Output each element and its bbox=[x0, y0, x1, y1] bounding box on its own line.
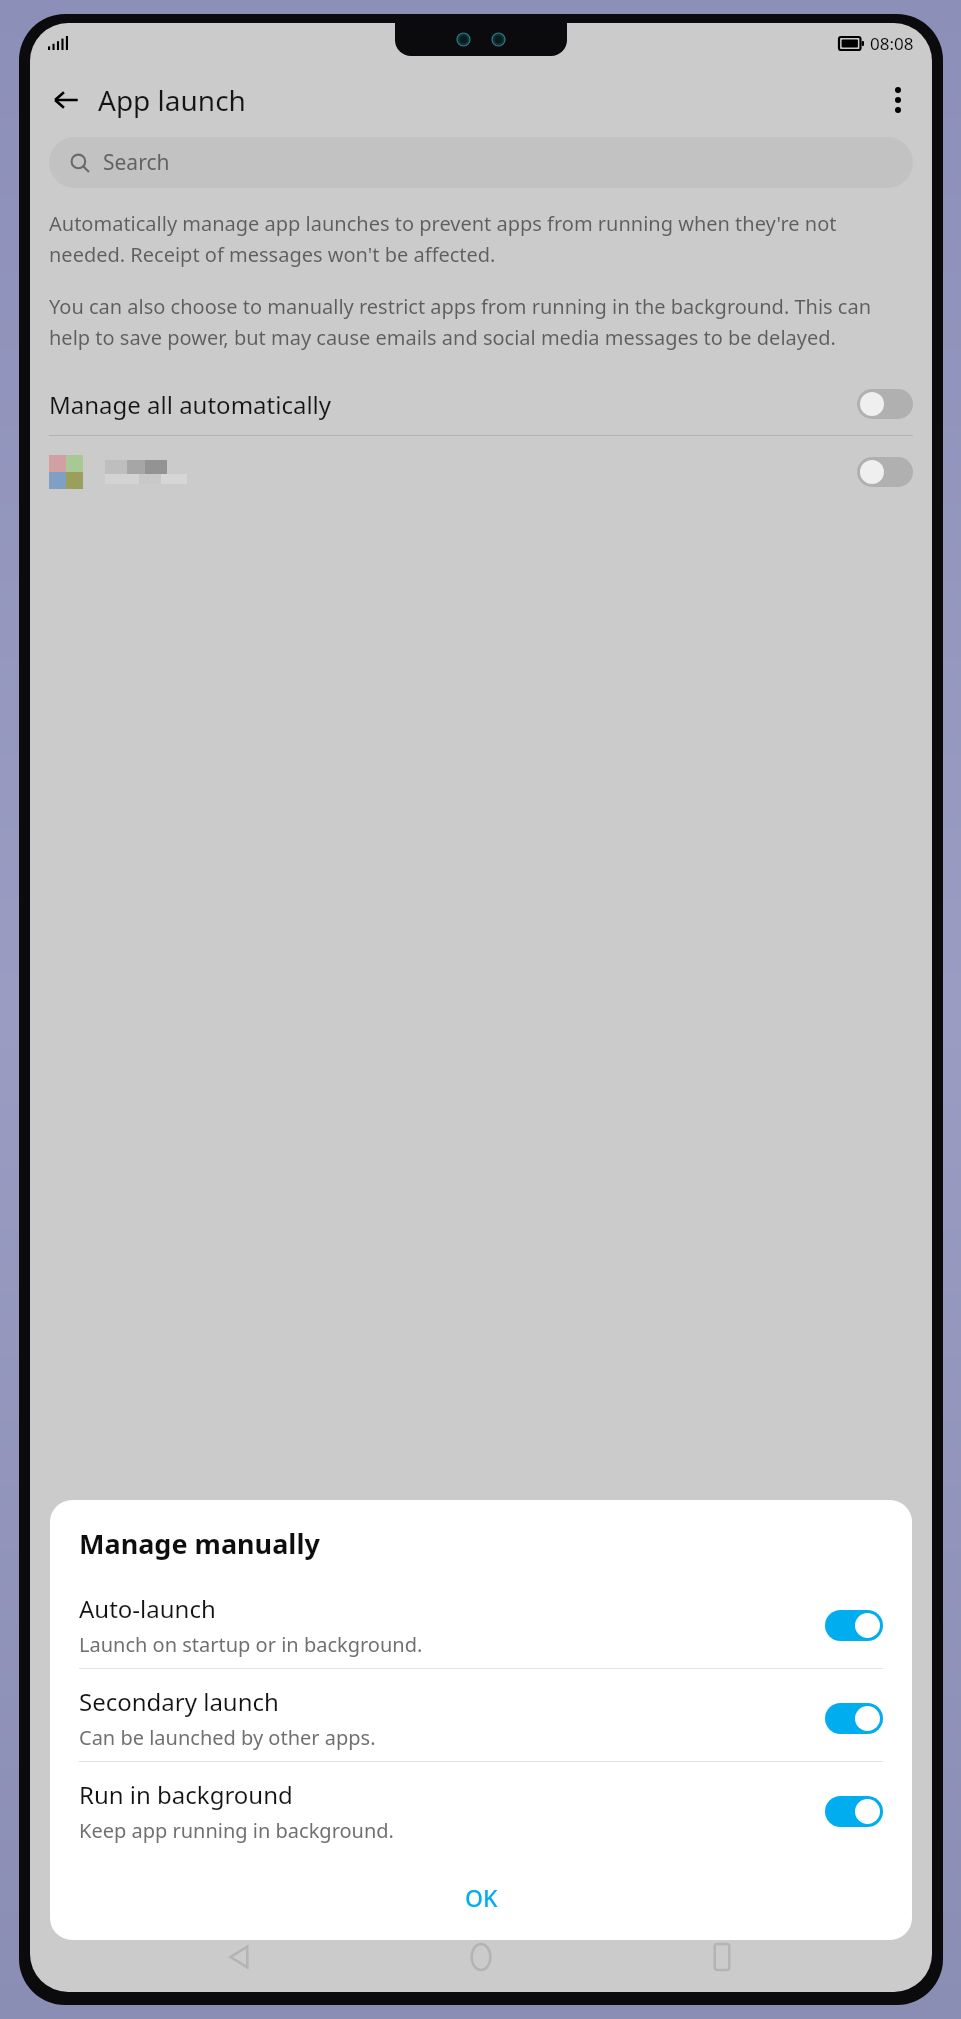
staticText: OK bbox=[465, 1882, 498, 1913]
staticText: Secondary launch bbox=[79, 1685, 279, 1718]
staticText: You can also choose to manually restrict… bbox=[49, 293, 913, 351]
button[interactable]: Manage all automatically bbox=[30, 373, 932, 435]
button[interactable]: Home bbox=[450, 1926, 512, 1988]
staticText: Manage all automatically bbox=[49, 388, 331, 421]
button[interactable]: Toggle on bbox=[825, 1796, 883, 1827]
staticText: Manage manually bbox=[79, 1525, 320, 1562]
button[interactable]: Search bbox=[49, 137, 913, 188]
staticText: Search bbox=[103, 148, 170, 177]
button[interactable]: OK bbox=[50, 1868, 912, 1926]
staticText: Auto-launch bbox=[79, 1592, 216, 1625]
staticText: Automatically manage app launches to pre… bbox=[49, 210, 913, 268]
button[interactable]: Auto-launch bbox=[50, 1588, 912, 1668]
staticText: Can be launched by other apps. bbox=[79, 1724, 376, 1751]
button[interactable]: Toggle on bbox=[825, 1703, 883, 1734]
button[interactable]: Back bbox=[209, 1926, 271, 1988]
staticText: App launch bbox=[98, 81, 246, 119]
button[interactable]: Back bbox=[40, 74, 92, 126]
button[interactable]: Secondary launch bbox=[50, 1681, 912, 1761]
button[interactable]: Toggle off bbox=[30, 436, 932, 508]
button[interactable]: Toggle off bbox=[857, 389, 913, 419]
button[interactable]: Toggle off bbox=[857, 457, 913, 487]
button[interactable]: Run in background bbox=[50, 1774, 912, 1854]
staticText: Keep app running in background. bbox=[79, 1817, 394, 1844]
staticText: Launch on startup or in background. bbox=[79, 1631, 423, 1658]
button[interactable]: Recents bbox=[691, 1926, 753, 1988]
button[interactable]: Toggle on bbox=[825, 1610, 883, 1641]
button[interactable]: More options bbox=[874, 76, 922, 124]
staticText: 08:08 bbox=[870, 32, 914, 55]
staticText: Run in background bbox=[79, 1778, 293, 1811]
